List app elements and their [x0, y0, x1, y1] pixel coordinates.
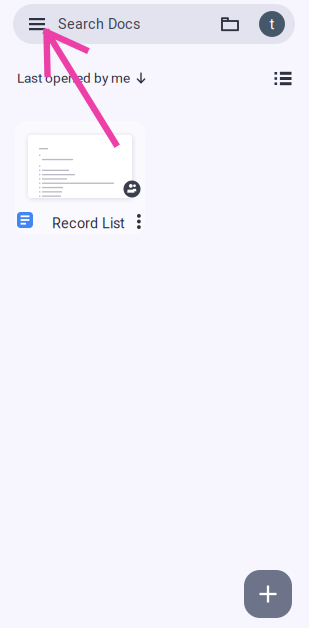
staticText: t: [269, 15, 274, 33]
button[interactable]: Folders: [213, 4, 247, 44]
button[interactable]: Search Docs: [58, 4, 208, 44]
button[interactable]: Main menu: [19, 4, 55, 44]
staticText: Last opened by me: [17, 70, 130, 86]
button[interactable]: Create new document: [244, 570, 292, 618]
staticText: Record List: [52, 215, 125, 232]
button[interactable]: Record List: [15, 121, 145, 234]
button[interactable]: Account: [253, 4, 291, 44]
button[interactable]: Last opened by me: [17, 65, 146, 91]
button[interactable]: Switch to list view: [268, 65, 298, 91]
staticText: Search Docs: [58, 16, 140, 32]
